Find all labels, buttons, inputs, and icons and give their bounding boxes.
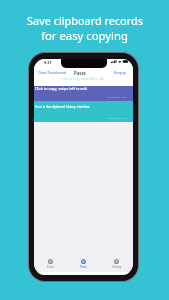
staticText: 2021/06/08 14:04 [107, 95, 127, 98]
staticText: Click to copy, swipe left to edit [35, 86, 87, 91]
staticText: for easy copying [41, 28, 128, 43]
staticText: Click to copy, swipe left to edit [62, 77, 105, 81]
staticText: Save clipboard records [27, 13, 143, 28]
button[interactable]: Clear Pasteboard [38, 70, 67, 75]
staticText: Paste [80, 265, 88, 269]
button[interactable]: Paste [67, 256, 100, 272]
button[interactable]: Empty [114, 70, 126, 75]
staticText: Setting [112, 265, 122, 269]
button[interactable]: Setting [100, 256, 133, 272]
staticText: 2021/06/08 14:04 [107, 116, 127, 119]
staticText: 9:31 [44, 60, 52, 65]
staticText: Clear [47, 265, 54, 269]
button[interactable]: Paste [74, 70, 86, 76]
button[interactable]: Clear [34, 256, 67, 272]
button[interactable]: Here is the clipboard history interface [34, 101, 133, 122]
staticText: Here is the clipboard history interface [35, 105, 90, 109]
button[interactable]: Click to copy, swipe left to edit [34, 86, 133, 101]
